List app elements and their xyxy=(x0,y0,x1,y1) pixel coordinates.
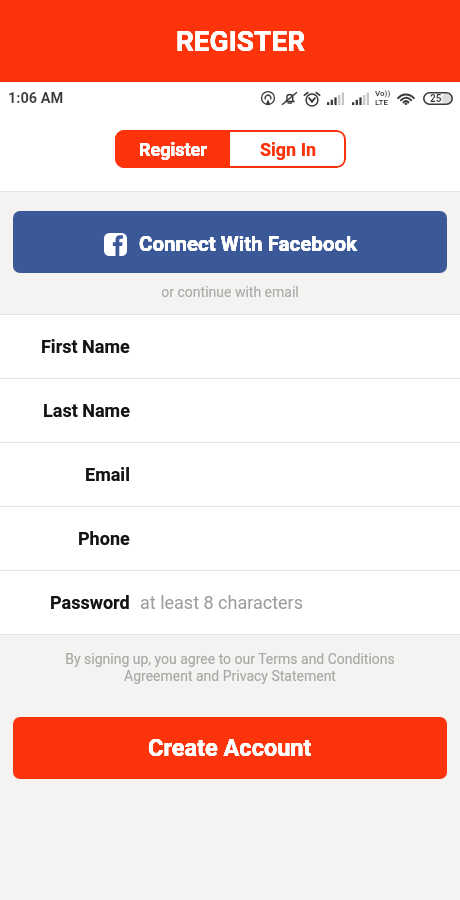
button[interactable]: Last Name xyxy=(0,379,460,442)
staticText: Connect With Facebook xyxy=(139,232,358,256)
button[interactable]: Phone xyxy=(0,507,460,570)
button[interactable]: Password xyxy=(0,571,460,634)
staticText: Email xyxy=(85,464,130,485)
button[interactable]: Connect With Facebook xyxy=(13,211,447,273)
staticText: First Name xyxy=(41,336,130,357)
button[interactable]: Sign In xyxy=(230,130,346,168)
staticText: Password xyxy=(50,592,130,613)
staticText: 1:06 AM xyxy=(8,90,64,107)
staticText: Last Name xyxy=(43,400,130,421)
staticText: First Name xyxy=(41,336,130,357)
staticText: By signing up, you agree to our Terms an… xyxy=(0,651,460,685)
staticText: Email xyxy=(85,464,130,485)
button[interactable]: Register xyxy=(115,130,230,168)
staticText: Connect With Facebook xyxy=(139,232,358,256)
button[interactable]: Create Account xyxy=(13,717,447,779)
staticText: at least 8 characters xyxy=(140,592,303,613)
staticText: or continue with email xyxy=(0,284,460,300)
staticText: REGISTER xyxy=(176,25,306,58)
staticText: Phone xyxy=(78,528,130,549)
staticText: Register xyxy=(139,139,207,160)
staticText: Create Account xyxy=(148,734,312,762)
staticText: Sign In xyxy=(260,139,317,160)
staticText: Register xyxy=(139,139,207,160)
staticText: LTE xyxy=(375,98,388,107)
button[interactable]: Email xyxy=(0,443,460,506)
button[interactable]: First Name xyxy=(0,315,460,378)
staticText: Create Account xyxy=(148,734,312,762)
staticText: Phone xyxy=(78,528,130,549)
staticText: REGISTER xyxy=(176,25,306,58)
staticText: Last Name xyxy=(43,400,130,421)
staticText: 25 xyxy=(430,93,442,105)
staticText: Vo)) xyxy=(375,89,391,98)
staticText: Sign In xyxy=(260,139,317,160)
staticText: Password xyxy=(50,592,130,613)
